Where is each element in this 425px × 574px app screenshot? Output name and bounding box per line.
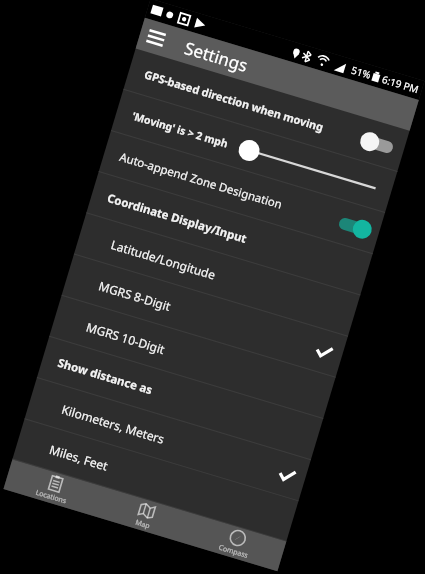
staticText: 'Moving' is > 2 mph (130, 109, 230, 151)
staticText: Auto-append Zone Designation (118, 149, 284, 213)
button[interactable]: Kilometers, Meters (24, 378, 311, 501)
button[interactable]: 'Moving' is > 2 mph (111, 90, 397, 213)
button[interactable]: Toggle on (333, 211, 374, 242)
button[interactable]: Map (95, 487, 195, 544)
button[interactable]: MGRS 10-Digit (49, 296, 335, 419)
button[interactable]: Toggle off (358, 129, 399, 160)
staticText: 6:19 PM (380, 72, 421, 96)
button[interactable]: Open navigation menu (146, 29, 166, 47)
button[interactable]: MGRS 8-Digit (61, 254, 348, 378)
button[interactable]: Miles, Feet (12, 419, 298, 542)
other: Selected (276, 465, 297, 486)
staticText: 51% (350, 63, 373, 82)
staticText: Kilometers, Meters (60, 401, 167, 447)
staticText: MGRS 8-Digit (97, 277, 173, 314)
other: Selected (313, 341, 334, 362)
staticText: Show distance as (56, 355, 154, 398)
staticText: Latitude/Longitude (109, 236, 218, 283)
staticText: Compass (217, 543, 250, 561)
button[interactable]: Auto-append Zone Designation (99, 131, 385, 254)
staticText: MGRS 10-Digit (84, 318, 168, 357)
staticText: Map (134, 518, 151, 532)
button[interactable]: Latitude/Longitude (74, 213, 360, 337)
button[interactable]: Coordinate Display/Input (86, 172, 372, 295)
staticText: Settings (182, 36, 251, 77)
button[interactable]: Locations (3, 459, 104, 517)
button[interactable]: Compass (186, 514, 286, 571)
staticText: Locations (34, 488, 68, 507)
button[interactable]: Show distance as (37, 337, 323, 460)
staticText: GPS-based direction when moving (143, 66, 326, 135)
button[interactable]: GPS-based direction when moving (123, 48, 410, 172)
staticText: Coordinate Display/Input (105, 190, 249, 247)
staticText: Miles, Feet (48, 441, 111, 474)
